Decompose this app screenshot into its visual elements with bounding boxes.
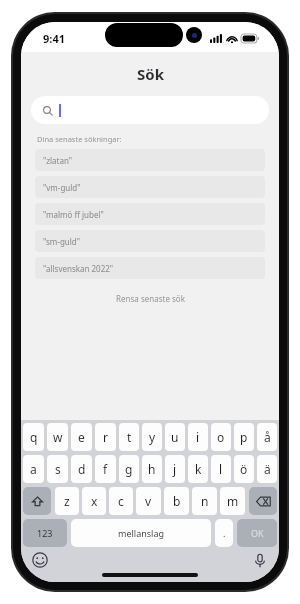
button[interactable]: [31, 96, 269, 124]
button[interactable]: Emoji: [31, 551, 49, 569]
staticText: t: [127, 429, 132, 445]
button[interactable]: g: [119, 455, 139, 483]
staticText: ö: [240, 461, 248, 477]
staticText: p: [240, 429, 248, 445]
staticText: 9:41: [43, 31, 65, 46]
button[interactable]: f: [95, 455, 116, 483]
staticText: g: [125, 461, 133, 477]
staticText: a: [30, 461, 37, 477]
staticText: h: [148, 461, 156, 477]
staticText: k: [195, 461, 202, 477]
staticText: j: [173, 461, 177, 477]
staticText: c: [118, 493, 124, 509]
staticText: å: [264, 429, 271, 445]
staticText: r: [103, 429, 108, 445]
button[interactable]: Dictation: [251, 551, 269, 569]
staticText: Sök: [137, 64, 164, 84]
button[interactable]: ä: [257, 455, 277, 483]
button[interactable]: y: [142, 423, 162, 451]
staticText: "zlatan": [43, 155, 73, 166]
staticText: e: [78, 429, 85, 445]
button[interactable]: Shift: [23, 487, 51, 515]
staticText: z: [64, 493, 70, 509]
button[interactable]: "allsvenskan 2022": [35, 257, 265, 279]
button[interactable]: z: [55, 487, 79, 515]
staticText: "malmö ff jubel": [43, 209, 104, 220]
button[interactable]: 123: [23, 519, 67, 547]
staticText: o: [217, 429, 225, 445]
button[interactable]: "sm-guld": [35, 230, 265, 252]
staticText: ä: [264, 461, 271, 477]
button[interactable]: j: [165, 455, 185, 483]
staticText: y: [149, 429, 156, 445]
button[interactable]: mellanslag: [71, 519, 211, 547]
button[interactable]: q: [23, 423, 44, 451]
button[interactable]: d: [71, 455, 92, 483]
staticText: 123: [37, 527, 53, 539]
staticText: Dina senaste sökningar:: [37, 134, 122, 144]
staticText: s: [55, 461, 61, 477]
button[interactable]: "zlatan": [35, 149, 265, 171]
staticText: d: [78, 461, 86, 477]
staticText: q: [30, 429, 38, 445]
button[interactable]: c: [109, 487, 133, 515]
staticText: "vm-guld": [43, 182, 81, 193]
button[interactable]: i: [188, 423, 208, 451]
staticText: l: [219, 461, 223, 477]
button[interactable]: l: [211, 455, 231, 483]
staticText: x: [91, 493, 98, 509]
button[interactable]: x: [82, 487, 106, 515]
button[interactable]: o: [211, 423, 231, 451]
button[interactable]: k: [188, 455, 208, 483]
staticText: b: [173, 493, 181, 509]
button[interactable]: n: [192, 487, 217, 515]
button[interactable]: a: [23, 455, 44, 483]
staticText: OK: [251, 527, 264, 539]
button[interactable]: u: [165, 423, 185, 451]
button[interactable]: "malmö ff jubel": [35, 203, 265, 225]
button[interactable]: s: [47, 455, 68, 483]
button[interactable]: v: [136, 487, 161, 515]
button[interactable]: Backspace: [249, 487, 277, 515]
staticText: m: [227, 493, 239, 509]
staticText: mellanslag: [118, 527, 164, 539]
button[interactable]: t: [119, 423, 139, 451]
button[interactable]: r: [95, 423, 116, 451]
button[interactable]: m: [220, 487, 245, 515]
button[interactable]: "vm-guld": [35, 176, 265, 198]
button[interactable]: b: [164, 487, 189, 515]
button[interactable]: e: [71, 423, 92, 451]
staticText: v: [145, 493, 152, 509]
button[interactable]: OK: [237, 519, 277, 547]
button[interactable]: Rensa senaste sök: [106, 290, 195, 307]
staticText: "allsvenskan 2022": [43, 263, 114, 274]
staticText: f: [103, 461, 108, 477]
staticText: .: [223, 527, 226, 539]
staticText: n: [201, 493, 209, 509]
staticText: i: [196, 429, 200, 445]
button[interactable]: w: [47, 423, 68, 451]
button[interactable]: .: [215, 519, 233, 547]
button[interactable]: h: [142, 455, 162, 483]
staticText: "sm-guld": [43, 236, 81, 247]
button[interactable]: å: [257, 423, 277, 451]
staticText: w: [53, 429, 63, 445]
button[interactable]: p: [234, 423, 254, 451]
button[interactable]: ö: [234, 455, 254, 483]
staticText: Rensa senaste sök: [116, 293, 185, 304]
staticText: u: [171, 429, 179, 445]
